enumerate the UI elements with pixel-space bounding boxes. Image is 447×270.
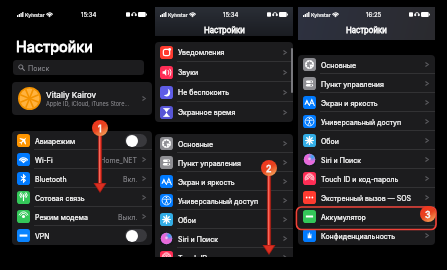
staticText: Siri и Поиск bbox=[321, 156, 362, 164]
button[interactable]: Bluetooth bbox=[12, 169, 152, 188]
staticText: Пункт управления bbox=[321, 80, 384, 88]
button[interactable]: Экран и яркость bbox=[298, 93, 435, 112]
staticText: Vitaliy Kairov bbox=[46, 90, 97, 100]
staticText: Универсальный доступ bbox=[178, 197, 259, 205]
button[interactable]: Обои bbox=[298, 131, 435, 150]
button[interactable]: Siri и Поиск bbox=[155, 229, 293, 248]
button[interactable]: Пункт управления bbox=[298, 74, 435, 93]
button[interactable]: Обои bbox=[155, 210, 293, 229]
staticText: Сотовая связь bbox=[35, 194, 85, 202]
staticText: Kyivstar bbox=[25, 12, 45, 18]
button[interactable]: VPN bbox=[12, 226, 152, 245]
staticText: Siri и Поиск bbox=[178, 235, 219, 243]
staticText: Поиск bbox=[28, 64, 50, 72]
staticText: Обои bbox=[178, 216, 196, 224]
button[interactable]: Siri и Поиск bbox=[298, 150, 435, 169]
staticText: 1 bbox=[98, 123, 102, 134]
staticText: Bluetooth bbox=[35, 175, 67, 183]
button[interactable]: Аккумулятор bbox=[298, 207, 435, 226]
staticText: Kyivstar bbox=[168, 12, 188, 18]
button[interactable]: Основные bbox=[155, 134, 293, 153]
button[interactable]: Сотовая связь bbox=[12, 188, 152, 207]
staticText: Аккумулятор bbox=[321, 213, 366, 221]
button[interactable]: Экстренный вызов — SOS bbox=[298, 188, 435, 207]
button[interactable]: Звуки bbox=[155, 62, 293, 82]
staticText: 3 bbox=[425, 209, 431, 220]
button[interactable]: Уведомления bbox=[155, 42, 293, 62]
staticText: Настройки bbox=[204, 26, 245, 35]
staticText: VPN bbox=[35, 232, 50, 240]
staticText: Не беспокоить bbox=[178, 88, 230, 96]
staticText: Home_NET bbox=[100, 156, 138, 164]
staticText: Основные bbox=[178, 140, 214, 148]
button[interactable]: Универсальный доступ bbox=[298, 112, 435, 131]
staticText: Touch ID и код-пароль bbox=[178, 254, 256, 257]
staticText: Экстренный вызов — SOS bbox=[321, 194, 412, 202]
staticText: Пункт управления bbox=[178, 159, 241, 167]
button[interactable]: Экранное время bbox=[155, 102, 293, 122]
staticText: Настройки bbox=[346, 26, 387, 35]
button[interactable]: Touch ID и код-пароль bbox=[298, 169, 435, 188]
staticText: Основные bbox=[321, 61, 357, 69]
button[interactable]: Конфиденциальность bbox=[298, 226, 435, 245]
staticText: Kyivstar bbox=[311, 12, 331, 18]
button[interactable]: Поиск bbox=[13, 60, 144, 75]
button[interactable]: Основные bbox=[298, 55, 435, 74]
button[interactable]: Touch ID и код-пароль bbox=[155, 248, 293, 257]
button[interactable]: Пункт управления bbox=[155, 153, 293, 172]
staticText: 2 bbox=[266, 163, 272, 174]
button[interactable]: Экран и яркость bbox=[155, 172, 293, 191]
staticText: 15:34 bbox=[81, 11, 97, 18]
staticText: Выкл. bbox=[118, 213, 138, 221]
button[interactable]: Авиарежим bbox=[12, 131, 152, 150]
button[interactable]: Универсальный доступ bbox=[155, 191, 293, 210]
button[interactable]: Vitaliy Kairov bbox=[12, 82, 152, 115]
staticText: Вкл. bbox=[123, 175, 138, 183]
staticText: Авиарежим bbox=[35, 137, 76, 145]
button[interactable]: Wi-Fi bbox=[12, 150, 152, 169]
staticText: Настройки bbox=[16, 38, 93, 56]
staticText: Обои bbox=[321, 137, 339, 145]
staticText: Экранное время bbox=[178, 108, 236, 116]
staticText: Экран и яркость bbox=[321, 99, 378, 107]
button[interactable]: Режим модема bbox=[12, 207, 152, 226]
staticText: 15:34 bbox=[223, 11, 239, 18]
staticText: Apple ID, iCloud, iTunes Store... bbox=[46, 101, 130, 108]
staticText: Wi-Fi bbox=[35, 156, 53, 164]
staticText: Универсальный доступ bbox=[321, 118, 402, 126]
staticText: Режим модема bbox=[35, 213, 88, 221]
staticText: Конфиденциальность bbox=[321, 232, 396, 240]
staticText: 16:25 bbox=[366, 11, 382, 18]
staticText: Touch ID и код-пароль bbox=[321, 175, 399, 183]
staticText: Звуки bbox=[178, 68, 199, 76]
staticText: Экран и яркость bbox=[178, 178, 235, 186]
button[interactable]: Не беспокоить bbox=[155, 82, 293, 102]
staticText: Уведомления bbox=[178, 48, 225, 56]
